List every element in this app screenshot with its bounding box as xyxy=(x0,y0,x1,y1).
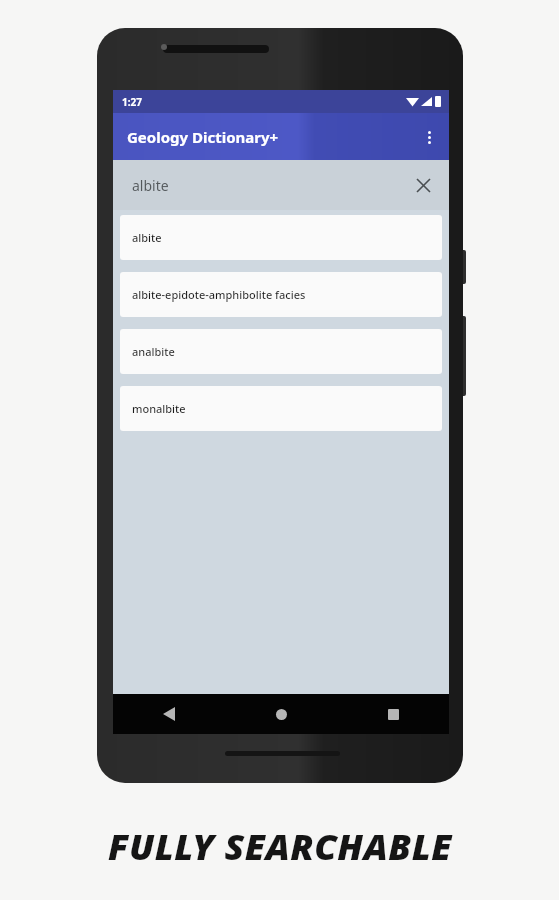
button[interactable]: albite-epidote-amphibolite facies xyxy=(120,272,442,317)
button[interactable]: Recents xyxy=(337,694,449,734)
staticText: analbite xyxy=(132,344,175,359)
button[interactable]: analbite xyxy=(120,329,442,374)
staticText: Geology Dictionary+ xyxy=(127,127,279,147)
staticText: albite-epidote-amphibolite facies xyxy=(132,287,306,302)
staticText: albite xyxy=(132,230,162,245)
staticText: FULLY SEARCHABLE xyxy=(108,822,452,871)
button[interactable]: More options xyxy=(409,117,449,157)
button[interactable]: Home xyxy=(225,694,337,734)
staticText: 1:27 xyxy=(122,95,142,109)
button[interactable]: Clear search xyxy=(407,169,439,201)
button[interactable]: monalbite xyxy=(120,386,442,431)
button[interactable]: albite xyxy=(120,215,442,260)
staticText: monalbite xyxy=(132,401,186,416)
button[interactable]: albite xyxy=(113,160,449,210)
staticText: albite xyxy=(132,176,169,195)
button[interactable]: Back xyxy=(113,694,225,734)
